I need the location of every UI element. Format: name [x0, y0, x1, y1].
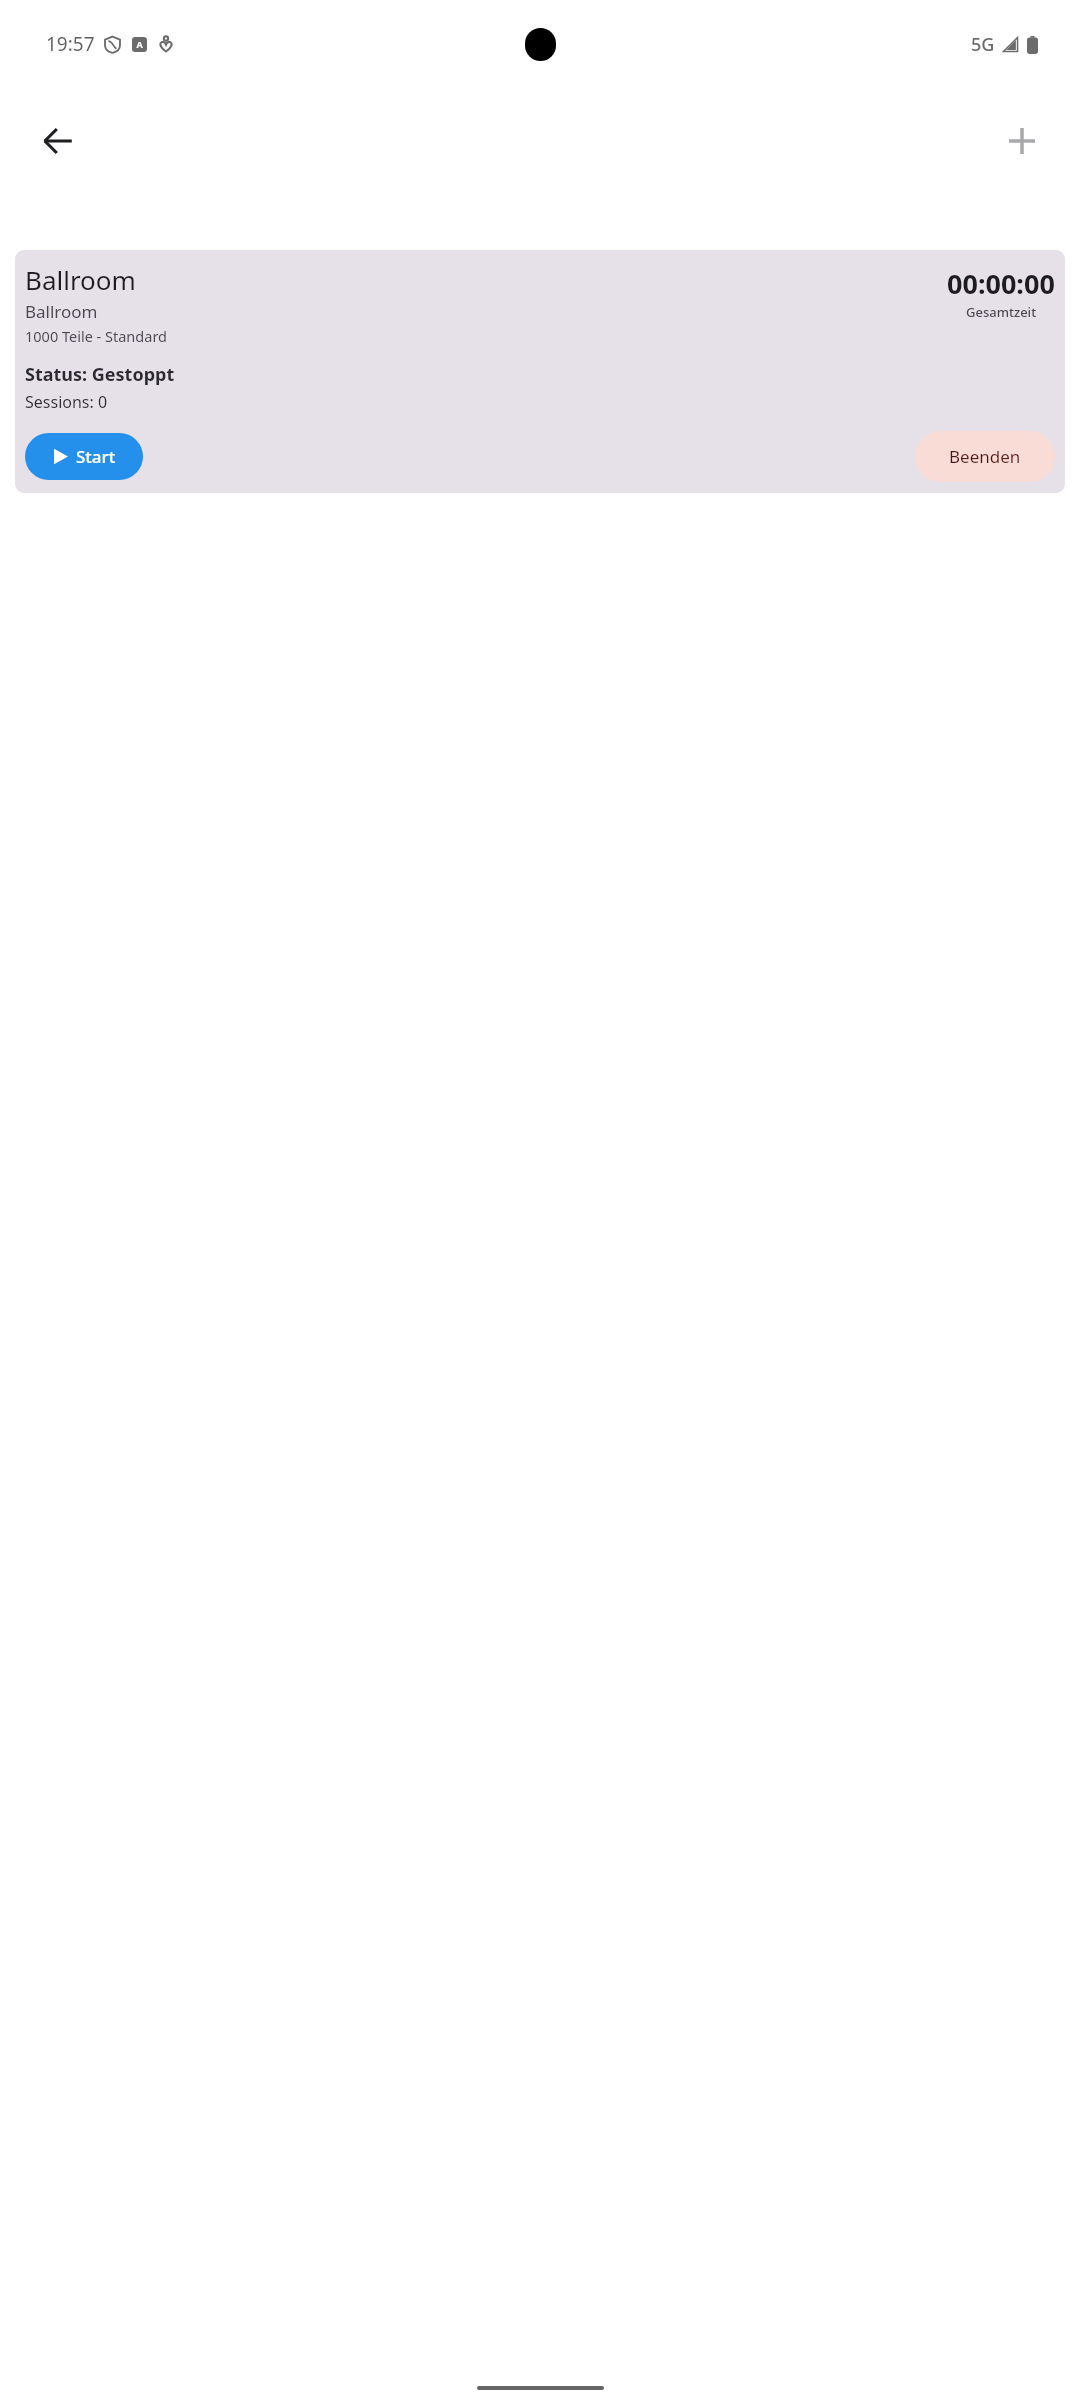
staticText: 1000 Teile - Standard [25, 326, 167, 346]
staticText: Ballroom [25, 300, 98, 323]
staticText: 19:57 [46, 31, 95, 57]
staticText: Beenden [949, 445, 1021, 468]
staticText: Start [76, 445, 116, 468]
staticText: 5G [971, 32, 995, 57]
button[interactable]: Back [26, 109, 90, 173]
staticText: Ballroom [25, 262, 136, 297]
staticText: Sessions: 0 [25, 391, 108, 413]
button[interactable]: Beenden [915, 431, 1055, 482]
staticText: 00:00:00 [947, 265, 1055, 302]
button[interactable]: Start [25, 433, 143, 480]
staticText: Gesamtzeit [966, 303, 1037, 321]
button[interactable]: Ballroom [15, 250, 1065, 493]
button[interactable]: Add [990, 109, 1054, 173]
staticText: A [136, 38, 143, 50]
staticText: Status: Gestoppt [25, 362, 175, 387]
